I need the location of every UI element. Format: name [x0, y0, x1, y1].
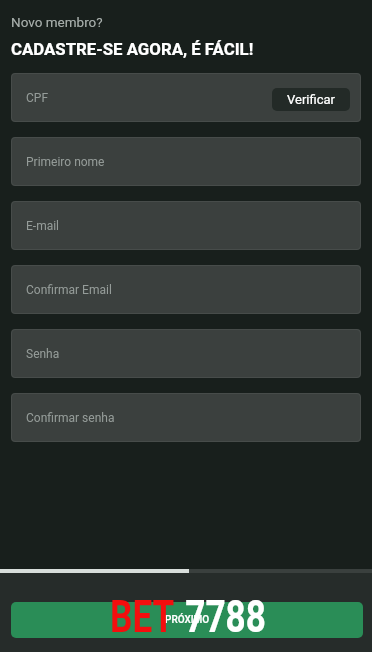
staticText: 7788: [185, 591, 266, 643]
button[interactable]: E-mail: [11, 201, 361, 250]
staticText: Confirmar Email: [26, 283, 112, 297]
staticText: Verificar: [287, 92, 335, 107]
button[interactable]: Primeiro nome: [11, 137, 361, 186]
staticText: Confirmar senha: [26, 411, 115, 425]
button[interactable]: CPF: [11, 73, 361, 122]
button[interactable]: Confirmar senha: [11, 393, 361, 442]
staticText: E-mail: [26, 219, 60, 233]
staticText: Novo membro?: [11, 14, 103, 30]
staticText: Primeiro nome: [26, 155, 105, 169]
button[interactable]: Senha: [11, 329, 361, 378]
staticText: Senha: [26, 347, 60, 361]
button[interactable]: Verificar: [272, 88, 350, 111]
staticText: CPF: [26, 91, 49, 105]
staticText: CADASTRE-SE AGORA, É FÁCIL!: [11, 39, 254, 59]
staticText: PRÓXIMO: [165, 614, 210, 626]
button[interactable]: PRÓXIMO: [11, 602, 363, 638]
button[interactable]: Confirmar Email: [11, 265, 361, 314]
staticText: BET: [110, 591, 175, 643]
